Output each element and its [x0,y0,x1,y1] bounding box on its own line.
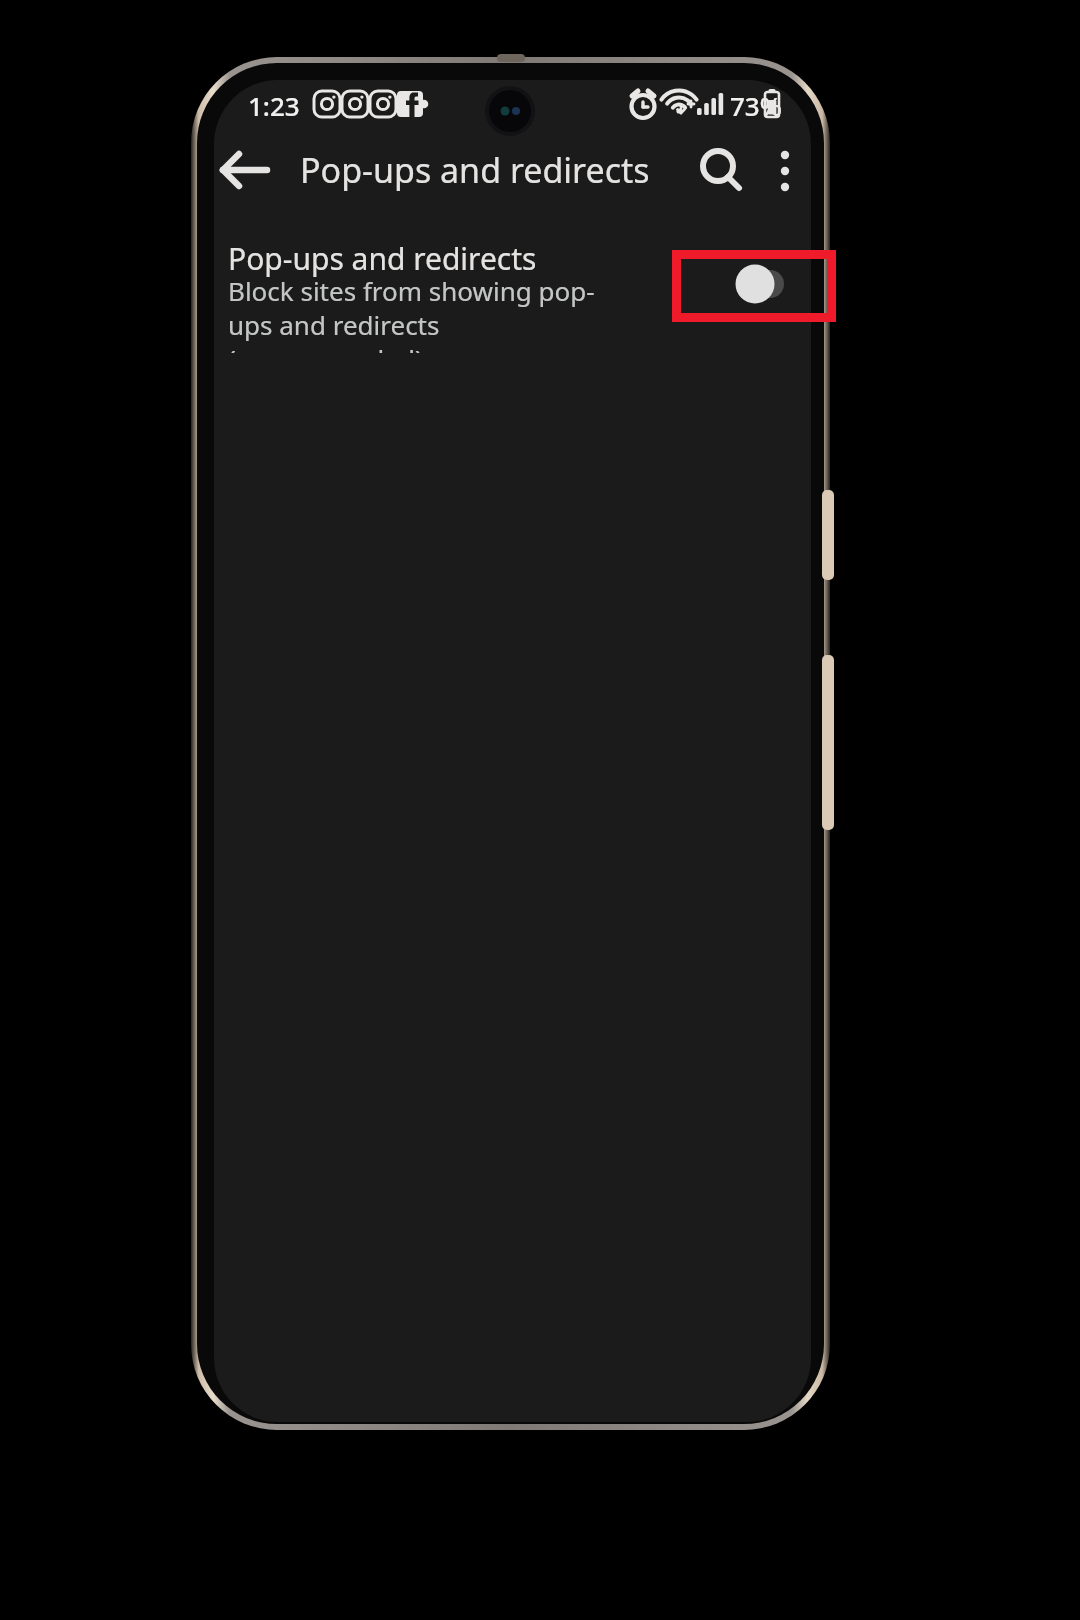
button[interactable]: Pop-ups and redirects toggle [716,246,796,322]
staticText: 73% [730,88,782,123]
button[interactable]: Search [678,127,766,215]
staticText: Pop-ups and redirects [300,147,650,193]
staticText: Pop-ups and redirects [228,238,537,279]
button[interactable] [214,225,811,345]
staticText: 1:23 [248,88,300,123]
button[interactable]: More options [745,127,825,215]
staticText: Block sites from showing pop-ups and red… [228,273,638,353]
button[interactable]: Navigate up [199,124,291,216]
